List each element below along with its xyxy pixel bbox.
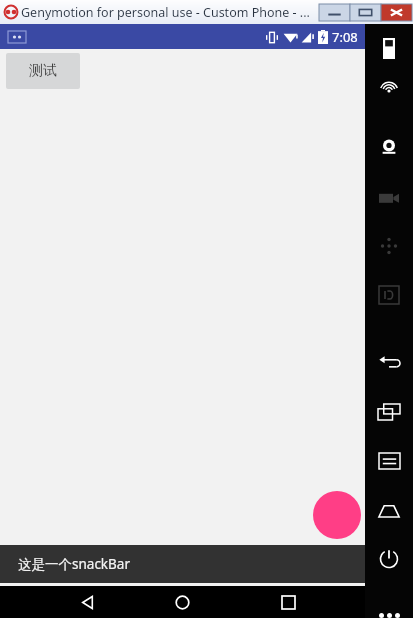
button[interactable]: Home — [157, 586, 207, 618]
staticText: 测试 — [29, 62, 57, 80]
button[interactable] — [319, 4, 350, 21]
button[interactable]: Multitouch — [365, 229, 413, 263]
button[interactable]: Camera — [365, 130, 413, 164]
button[interactable]: Menu — [365, 444, 413, 478]
button[interactable] — [350, 4, 381, 21]
button[interactable]: Back — [62, 586, 112, 618]
staticText: 这是一个snackBar — [18, 555, 130, 573]
button[interactable]: 这是一个snackBar — [0, 545, 365, 583]
button[interactable]: More — [365, 605, 413, 618]
button[interactable]: Recent apps — [263, 586, 313, 618]
staticText: Genymotion for personal use - Custom Pho… — [21, 4, 310, 21]
button[interactable]: Recent apps — [365, 395, 413, 429]
button[interactable]: 测试 — [6, 53, 80, 89]
staticText: 7:08 — [332, 28, 358, 46]
button[interactable] — [381, 4, 412, 21]
button[interactable]: Phone — [365, 31, 413, 65]
button[interactable]: Action — [313, 491, 361, 539]
button[interactable]: Power — [365, 542, 413, 576]
button[interactable]: Identifiers — [365, 278, 413, 312]
button[interactable]: Video — [365, 180, 413, 214]
button[interactable]: Home — [365, 493, 413, 527]
button[interactable]: GPS — [365, 78, 413, 112]
button[interactable]: Back — [365, 346, 413, 380]
